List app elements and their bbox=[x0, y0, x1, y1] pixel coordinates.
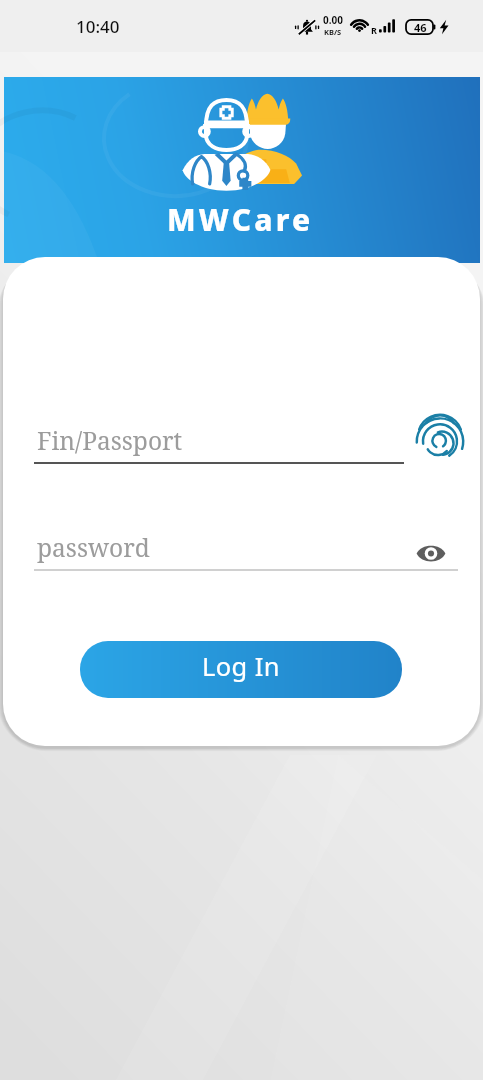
staticText: MWCare bbox=[167, 199, 314, 240]
staticText: 0.00 bbox=[323, 13, 343, 27]
staticText: Fin/Passport bbox=[37, 424, 183, 457]
button[interactable]: Fingerprint login bbox=[413, 410, 467, 464]
staticText: Log In bbox=[202, 649, 280, 684]
button[interactable]: password bbox=[34, 526, 458, 571]
button[interactable]: Show password bbox=[407, 529, 455, 577]
button[interactable]: Log In bbox=[80, 641, 402, 698]
staticText: R bbox=[371, 24, 377, 36]
button[interactable]: Fin/Passport bbox=[34, 419, 404, 464]
staticText: 46 bbox=[414, 20, 427, 35]
staticText: KB/S bbox=[324, 27, 342, 37]
staticText: password bbox=[37, 531, 150, 564]
staticText: 10:40 bbox=[76, 15, 120, 38]
